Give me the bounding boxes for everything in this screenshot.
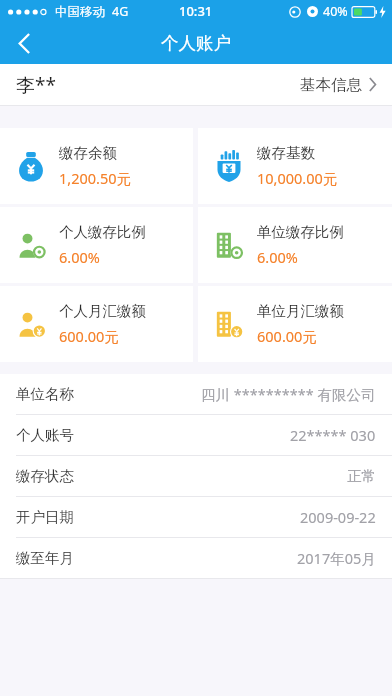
staticText: 李** bbox=[16, 72, 56, 98]
button[interactable]: 开户日期 bbox=[0, 497, 392, 537]
button[interactable]: 单位名称 bbox=[0, 374, 392, 414]
button[interactable]: 个人账号 bbox=[0, 415, 392, 455]
button[interactable]: 缴至年月 bbox=[0, 538, 392, 578]
staticText: 10:31 bbox=[179, 2, 213, 20]
staticText: 4G bbox=[112, 3, 129, 20]
staticText: 个人缴存比例 bbox=[59, 223, 146, 241]
button[interactable]: 李** bbox=[0, 64, 392, 105]
staticText: 个人账户 bbox=[161, 32, 231, 54]
button[interactable]: 个人月汇缴额 bbox=[0, 286, 193, 362]
staticText: 6.00% bbox=[257, 247, 298, 267]
staticText: 个人账号 bbox=[16, 426, 74, 444]
staticText: 缴存状态 bbox=[16, 467, 74, 485]
staticText: 缴存基数 bbox=[257, 144, 315, 162]
staticText: 正常 bbox=[347, 467, 376, 485]
button[interactable]: 单位月汇缴额 bbox=[198, 286, 392, 362]
staticText: 600.00元 bbox=[59, 326, 119, 346]
staticText: 10,000.00元 bbox=[257, 168, 338, 188]
staticText: 2017年05月 bbox=[297, 548, 376, 568]
button[interactable]: 单位缴存比例 bbox=[198, 207, 392, 283]
staticText: 个人月汇缴额 bbox=[59, 302, 146, 320]
button[interactable]: 缴存状态 bbox=[0, 456, 392, 496]
button[interactable]: 缴存基数 bbox=[198, 128, 392, 204]
button[interactable]: 缴存余额 bbox=[0, 128, 193, 204]
staticText: 中国移动 bbox=[55, 4, 105, 20]
staticText: 22***** 030 bbox=[290, 425, 376, 445]
staticText: 单位缴存比例 bbox=[257, 223, 344, 241]
staticText: 单位月汇缴额 bbox=[257, 302, 344, 320]
staticText: 600.00元 bbox=[257, 326, 317, 346]
button[interactable]: 个人缴存比例 bbox=[0, 207, 193, 283]
staticText: 四川 ********** 有限公司 bbox=[201, 384, 376, 404]
staticText: 40% bbox=[323, 3, 348, 20]
staticText: 开户日期 bbox=[16, 508, 74, 526]
button[interactable]: Back bbox=[0, 22, 48, 64]
staticText: 2009-09-22 bbox=[300, 507, 376, 527]
staticText: 1,200.50元 bbox=[59, 168, 132, 188]
staticText: 基本信息 bbox=[300, 75, 362, 95]
staticText: 单位名称 bbox=[16, 385, 74, 403]
staticText: 缴存余额 bbox=[59, 144, 117, 162]
staticText: 缴至年月 bbox=[16, 549, 74, 567]
staticText: 6.00% bbox=[59, 247, 100, 267]
